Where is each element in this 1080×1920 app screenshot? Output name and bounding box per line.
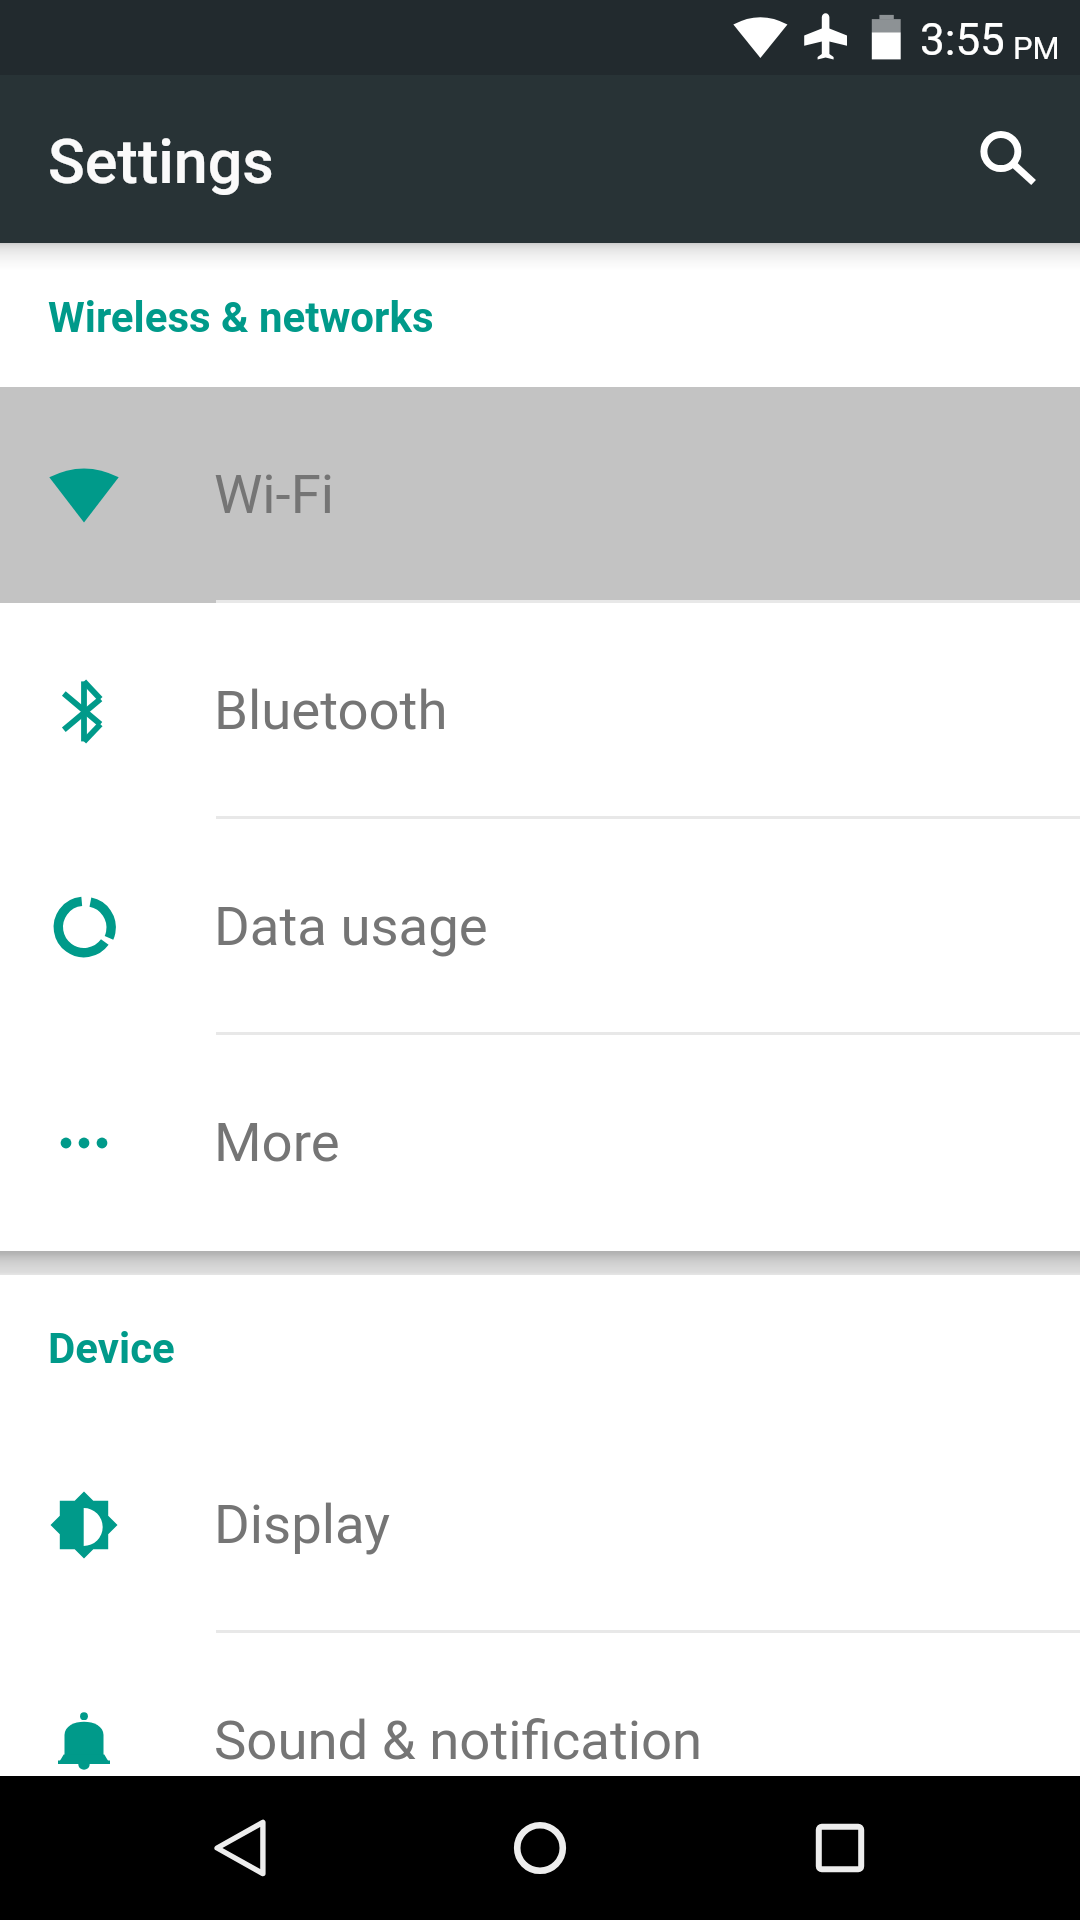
button[interactable]: Sound & notification	[0, 1633, 1080, 1776]
staticText: PM	[1013, 30, 1060, 66]
button[interactable]: Display	[0, 1417, 1080, 1633]
staticText: Wireless & networks	[48, 293, 434, 342]
staticText: Sound & notification	[214, 1708, 703, 1772]
button[interactable]: Wi-Fi	[0, 387, 1080, 603]
staticText: Bluetooth	[214, 678, 448, 742]
staticText: 3:55	[920, 14, 1005, 66]
staticText: Wi-Fi	[214, 462, 335, 526]
button[interactable]: Data usage	[0, 819, 1080, 1035]
staticText: Settings	[48, 126, 274, 197]
button[interactable]: Bluetooth	[0, 603, 1080, 819]
button[interactable]: Back	[168, 1776, 312, 1920]
staticText: Display	[214, 1492, 391, 1556]
staticText: Device	[48, 1324, 175, 1373]
button[interactable]: Home	[468, 1776, 612, 1920]
button[interactable]: Recent apps	[768, 1776, 912, 1920]
staticText: More	[214, 1110, 340, 1174]
button[interactable]: Search	[941, 75, 1061, 219]
button[interactable]: More	[0, 1035, 1080, 1251]
staticText: Data usage	[214, 894, 488, 958]
